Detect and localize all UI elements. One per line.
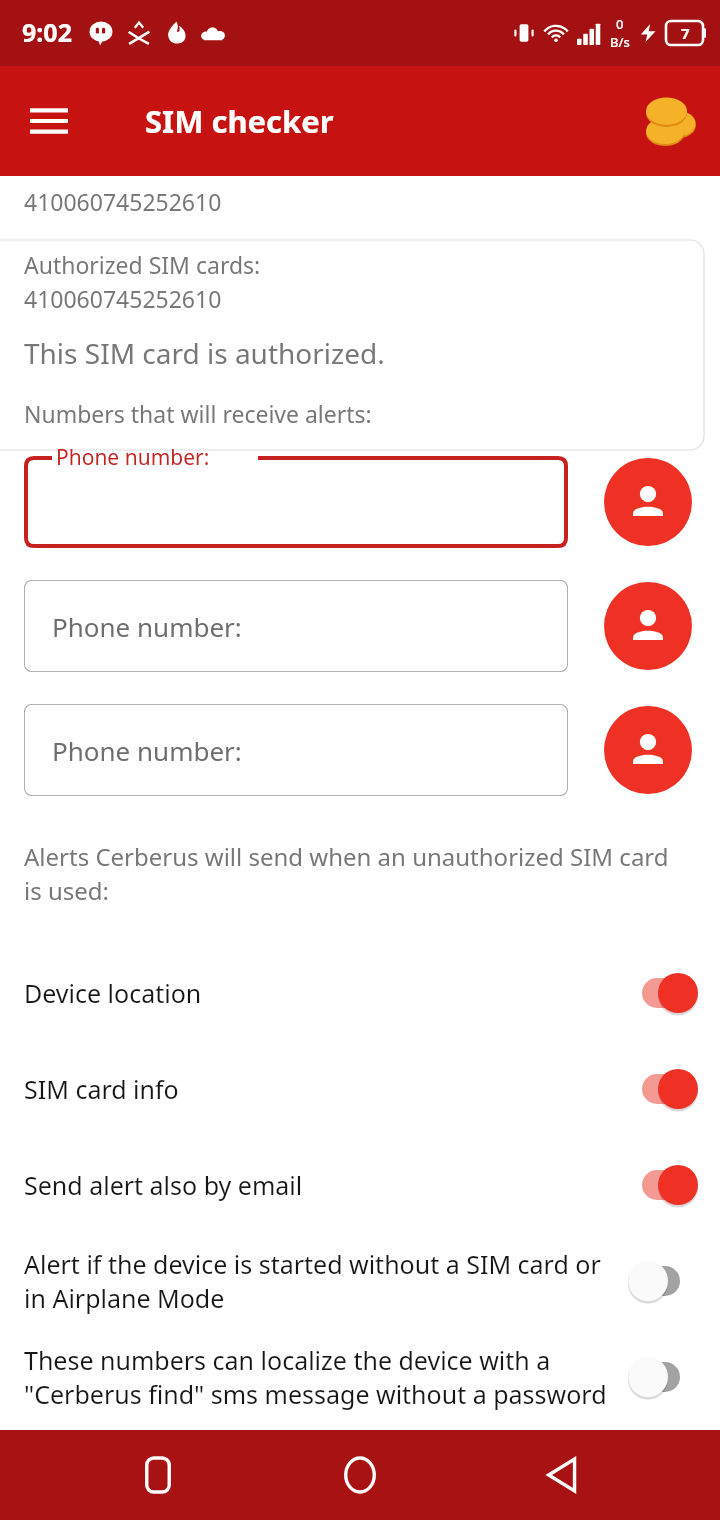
button[interactable]: Premium coins (632, 84, 706, 158)
staticText: These numbers can localize the device wi… (24, 1343, 610, 1412)
staticText: SIM card info (24, 1072, 610, 1106)
button[interactable]: Device location (0, 945, 720, 1041)
button[interactable]: Pick contact (604, 582, 692, 670)
button[interactable]: Open navigation menu (22, 94, 76, 148)
button[interactable]: Pick contact (604, 458, 692, 546)
staticText: Send alert also by email (24, 1168, 610, 1202)
button[interactable]: Alert if the device is started without a… (0, 1233, 720, 1329)
staticText: Phone number: (56, 443, 210, 472)
staticText: Alerts Cerberus will send when an unauth… (24, 840, 680, 907)
button[interactable]: Phone number: (24, 456, 568, 548)
button[interactable]: These numbers can localize the device wi… (0, 1329, 720, 1425)
staticText: SIM checker (145, 100, 334, 142)
staticText: 7 (681, 23, 690, 43)
staticText: Alert if the device is started without a… (24, 1247, 610, 1316)
staticText: B/s (610, 33, 630, 51)
staticText: Device location (24, 976, 610, 1010)
staticText: 0 (616, 15, 624, 33)
button[interactable]: Home (315, 1430, 405, 1520)
button[interactable]: Send alert also by email (0, 1137, 720, 1233)
staticText: Authorized SIM cards: 410060745252610 (24, 249, 261, 314)
staticText: 410060745252610 (24, 186, 222, 217)
button[interactable]: Phone number: (24, 580, 568, 672)
button[interactable]: Recent apps (113, 1430, 203, 1520)
staticText: 9:02 (22, 15, 72, 49)
button[interactable]: Phone number: (24, 704, 568, 796)
staticText: Phone number: (52, 733, 242, 768)
button[interactable]: SIM card info (0, 1041, 720, 1137)
button[interactable]: Back (518, 1430, 608, 1520)
staticText: Numbers that will receive alerts: (24, 398, 372, 429)
staticText: Phone number: (52, 609, 242, 644)
staticText: This SIM card is authorized. (24, 334, 385, 372)
button[interactable]: Pick contact (604, 706, 692, 794)
